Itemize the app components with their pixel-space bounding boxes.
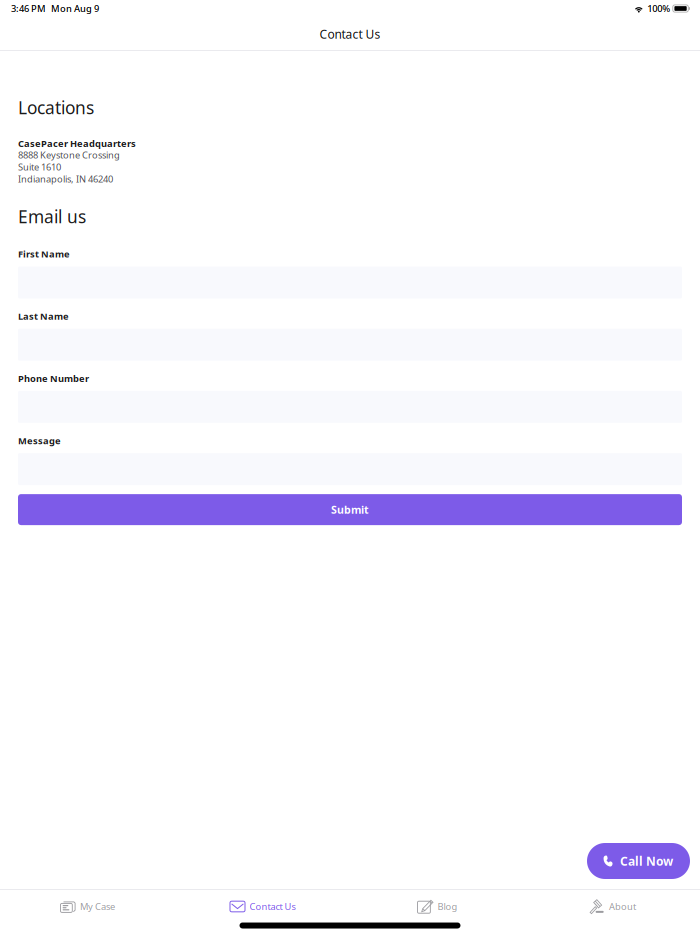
staticText: Last Name	[18, 310, 69, 322]
staticText: My Case	[80, 900, 115, 913]
staticText: Message	[18, 434, 61, 447]
staticText: Mon Aug 9	[51, 2, 99, 15]
staticText: Blog	[437, 900, 457, 913]
staticText: CasePacer Headquarters	[18, 137, 136, 150]
staticText: 100%	[647, 2, 670, 15]
staticText: Indianapolis, IN 46240	[18, 173, 113, 185]
button[interactable]: Call Now	[587, 843, 690, 879]
button[interactable]: Submit	[18, 494, 682, 525]
button[interactable]: Blog	[350, 892, 525, 920]
staticText: About	[609, 900, 636, 913]
staticText: Suite 1610	[18, 161, 61, 173]
staticText: 3:46 PM	[11, 2, 46, 15]
button[interactable]: About	[525, 892, 700, 920]
staticText: Contact Us	[319, 26, 380, 42]
staticText: Phone Number	[18, 372, 89, 385]
button[interactable]: Contact Us	[175, 892, 350, 920]
staticText: Contact Us	[249, 900, 295, 913]
staticText: Submit	[331, 502, 369, 517]
staticText: Email us	[18, 205, 86, 228]
staticText: 8888 Keystone Crossing	[18, 149, 120, 161]
staticText: First Name	[18, 248, 70, 260]
staticText: Locations	[18, 96, 94, 119]
button[interactable]: My Case	[0, 892, 175, 920]
staticText: Call Now	[620, 853, 673, 869]
